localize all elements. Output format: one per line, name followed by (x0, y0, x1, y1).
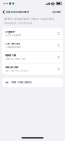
staticText: I will call you later (5, 46, 21, 48)
button[interactable]: Repeat that (2, 51, 63, 63)
button[interactable]: Upravit (52, 9, 65, 15)
staticText: Who are you? (5, 66, 18, 69)
staticText: Rychlá odpověď (6, 10, 29, 13)
staticText: Call you later (5, 42, 20, 45)
button[interactable]: Call you later (2, 40, 63, 51)
button[interactable]: Přidat rychlou odpověď (0, 75, 65, 87)
button[interactable]: Who are you? (2, 63, 63, 75)
button[interactable]: Urgentní? (2, 28, 63, 39)
staticText: odešlete z hodinek. (3, 22, 32, 25)
staticText: Přidat rychlou odpověď (11, 81, 31, 84)
staticText: Could you repeat that? (5, 58, 26, 60)
staticText: Můžete přizpůsobit rychlé odpovědi, (3, 17, 55, 20)
staticText: Je toto urgentní? (5, 34, 21, 37)
staticText: Repeat that (5, 54, 16, 57)
button[interactable]: Rychlá odpověď (0, 9, 29, 15)
staticText: Upravit (52, 10, 61, 14)
staticText: Can I ask who you are? (5, 70, 28, 72)
staticText: Urgentní? (5, 31, 15, 33)
